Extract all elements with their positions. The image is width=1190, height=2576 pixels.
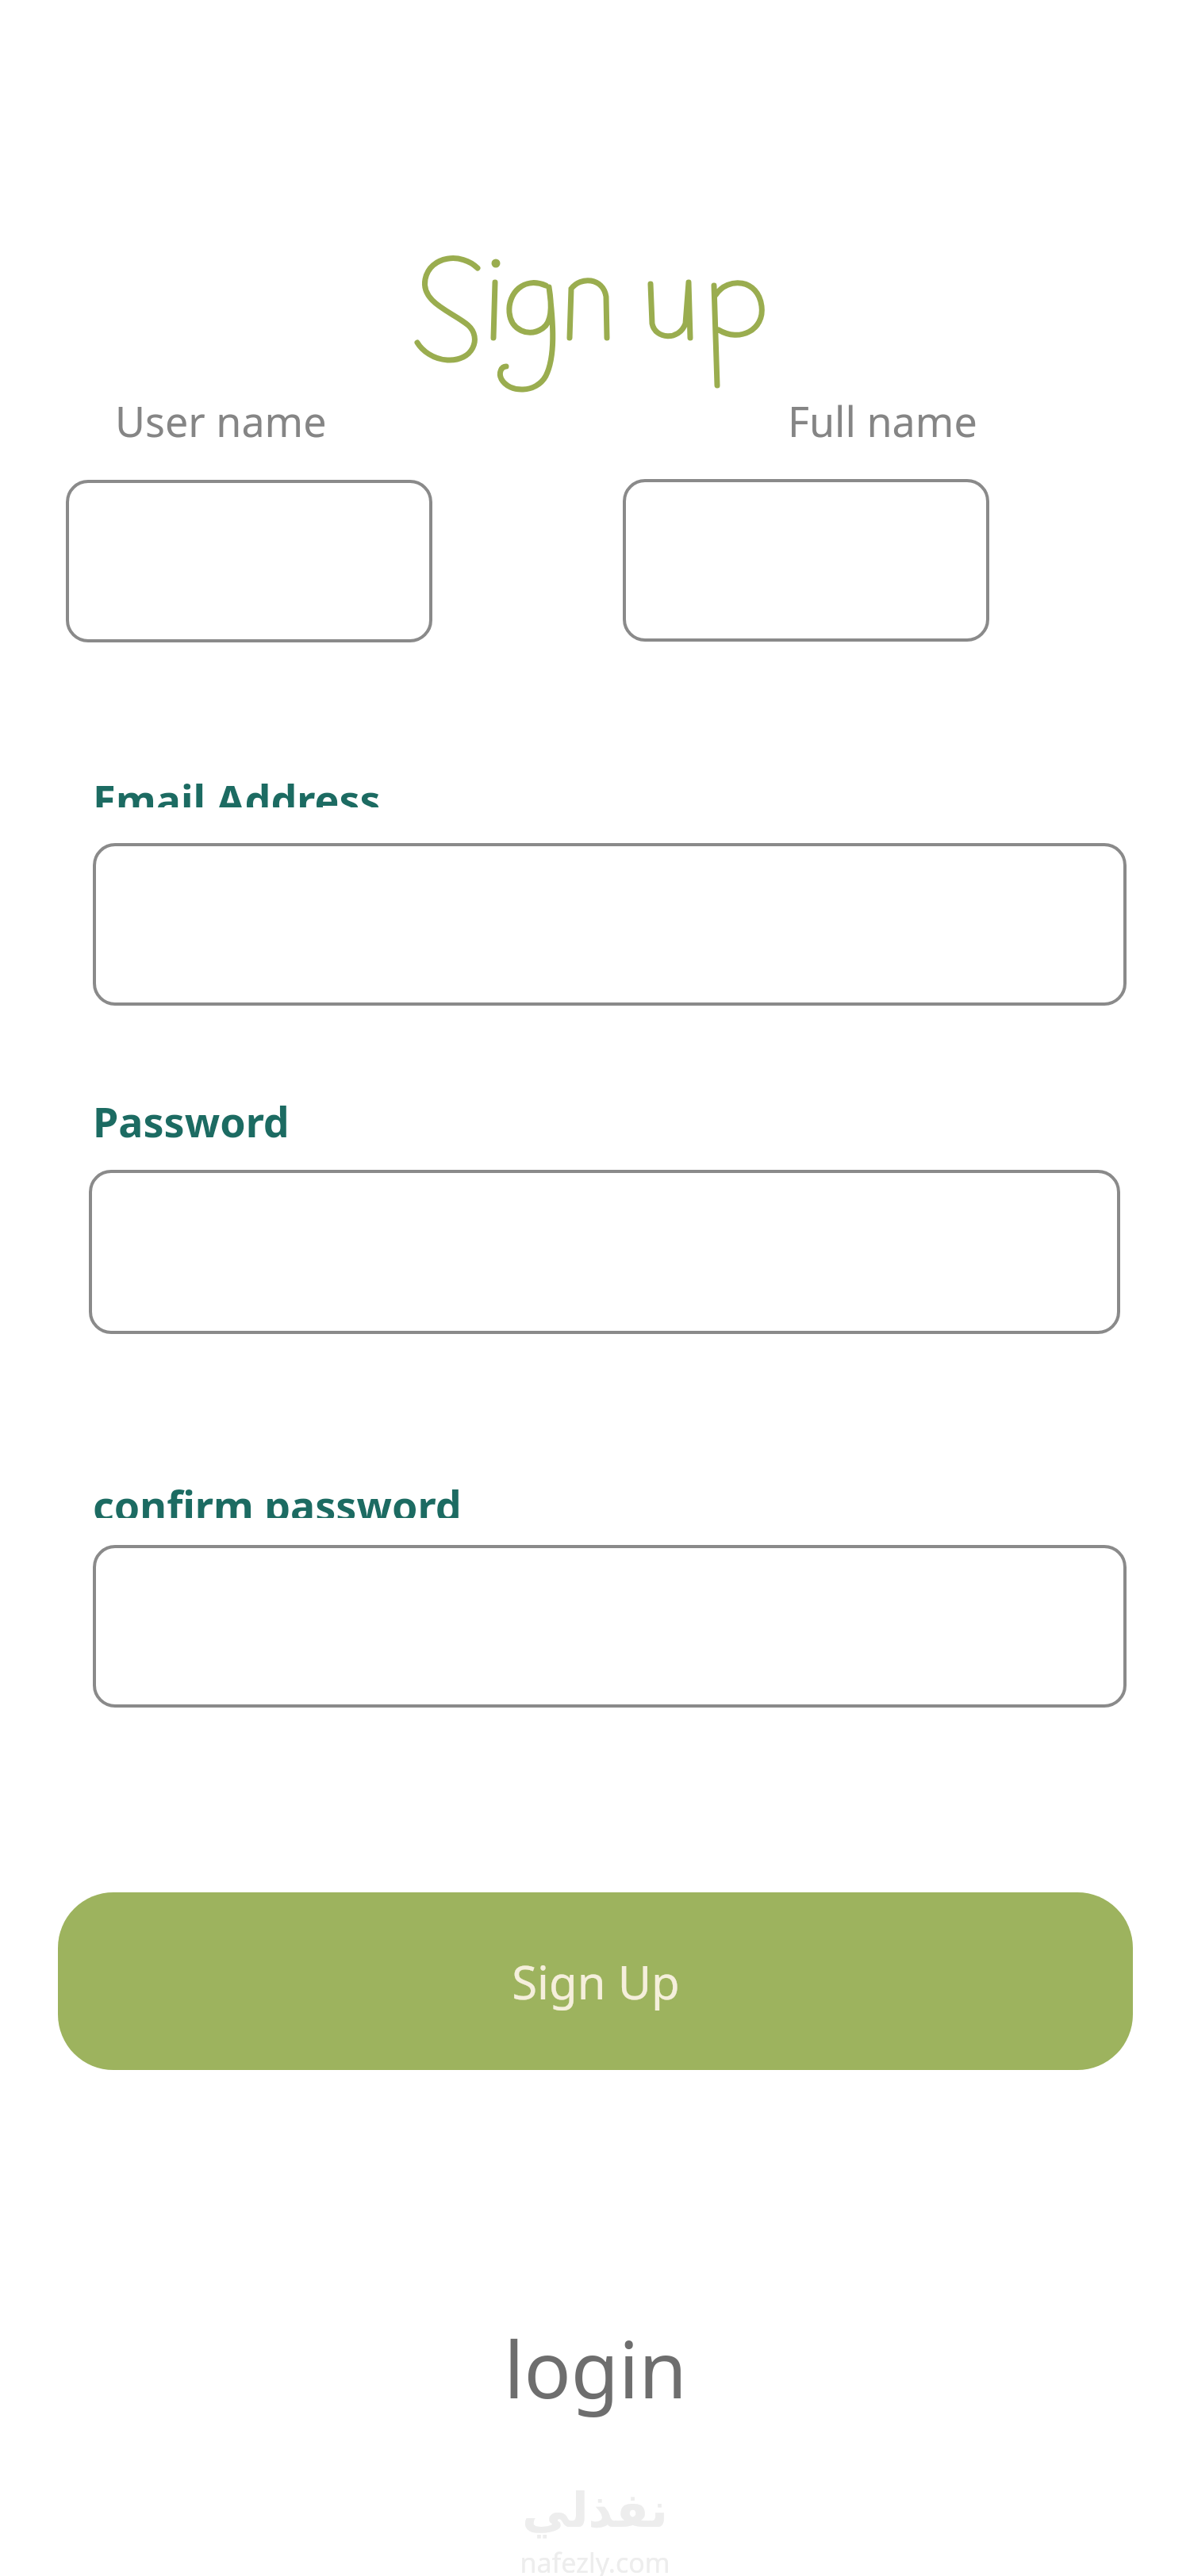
staticText: Sign Up bbox=[512, 1950, 680, 2013]
button[interactable]: Password field bbox=[89, 1170, 1120, 1334]
button[interactable]: Email address field bbox=[93, 843, 1127, 1006]
button[interactable]: Full name field bbox=[623, 479, 989, 642]
staticText: User name bbox=[115, 393, 327, 449]
staticText: Email Address bbox=[93, 780, 381, 807]
staticText: nafezly.com bbox=[476, 2544, 714, 2576]
staticText: نفذلي bbox=[522, 2482, 668, 2538]
button[interactable]: User name field bbox=[66, 480, 432, 642]
staticText: Full name bbox=[788, 393, 977, 449]
staticText: Password bbox=[93, 1093, 290, 1149]
button[interactable]: Sign Up bbox=[58, 1892, 1133, 2070]
staticText: login bbox=[504, 2315, 687, 2421]
staticText: confirm password bbox=[93, 1485, 462, 1518]
button[interactable]: login bbox=[476, 2308, 714, 2427]
button[interactable]: Confirm password field bbox=[93, 1545, 1127, 1708]
